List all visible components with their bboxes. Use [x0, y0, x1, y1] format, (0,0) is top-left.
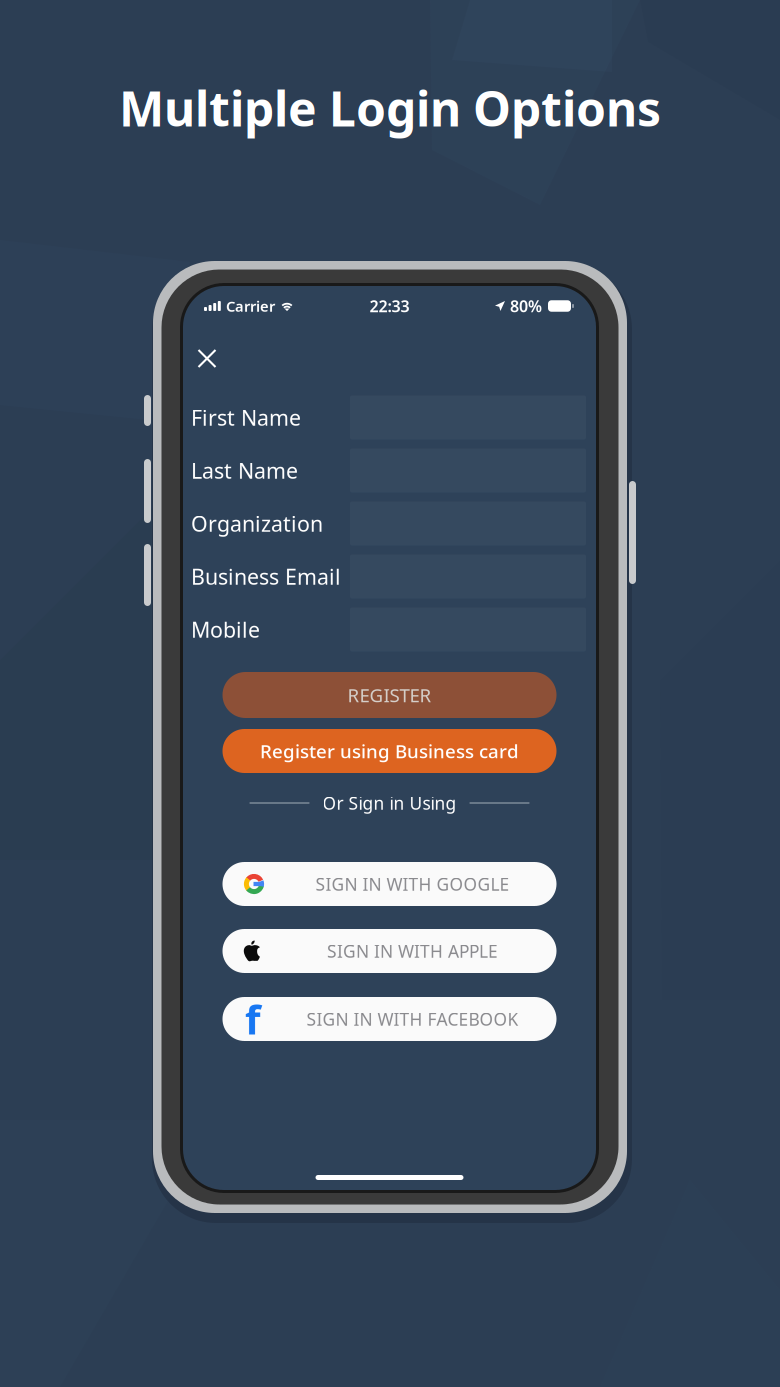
staticText: Multiple Login Options — [119, 76, 661, 140]
staticText: Business Email — [191, 562, 341, 591]
staticText: Mobile — [191, 615, 260, 644]
staticText: Register using Business card — [260, 739, 519, 763]
button[interactable]: SIGN IN WITH APPLE — [222, 929, 556, 973]
button[interactable]: f — [222, 997, 556, 1041]
button[interactable]: REGISTER — [222, 672, 556, 718]
button[interactable]: Register using Business card — [222, 729, 556, 773]
staticText: SIGN IN WITH APPLE — [327, 939, 498, 962]
staticText: Carrier — [226, 296, 275, 316]
staticText: SIGN IN WITH GOOGLE — [315, 872, 509, 895]
staticText: Or Sign in Using — [322, 791, 456, 814]
staticText: REGISTER — [347, 683, 431, 707]
staticText: 80% — [510, 295, 542, 317]
staticText: 22:33 — [369, 295, 409, 317]
staticText: SIGN IN WITH FACEBOOK — [306, 1007, 518, 1030]
staticText: Last Name — [191, 456, 298, 485]
staticText: First Name — [191, 403, 301, 432]
button[interactable]: SIGN IN WITH GOOGLE — [222, 862, 556, 906]
staticText: f — [245, 992, 260, 1045]
staticText: Organization — [191, 509, 323, 538]
button[interactable]: Close — [183, 332, 231, 384]
